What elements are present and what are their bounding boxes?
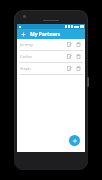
staticText: My Partners: [30, 31, 61, 38]
staticText: Steph: [20, 66, 31, 71]
button[interactable]: Delete Jeremy: [75, 41, 82, 48]
button[interactable]: Add partner: [69, 135, 80, 146]
button[interactable]: Edit Jeremy: [66, 41, 73, 48]
staticText: Jeremy: [20, 42, 33, 47]
button[interactable]: Add: [19, 30, 27, 38]
button[interactable]: Jeremy: [17, 39, 85, 50]
button[interactable]: Carlos: [17, 51, 85, 62]
button[interactable]: Delete Carlos: [75, 53, 82, 60]
button[interactable]: Delete Steph: [75, 65, 82, 72]
button[interactable]: Edit Steph: [66, 65, 73, 72]
button[interactable]: Edit Carlos: [66, 53, 73, 60]
staticText: Carlos: [20, 54, 32, 59]
button[interactable]: Steph: [17, 63, 85, 74]
